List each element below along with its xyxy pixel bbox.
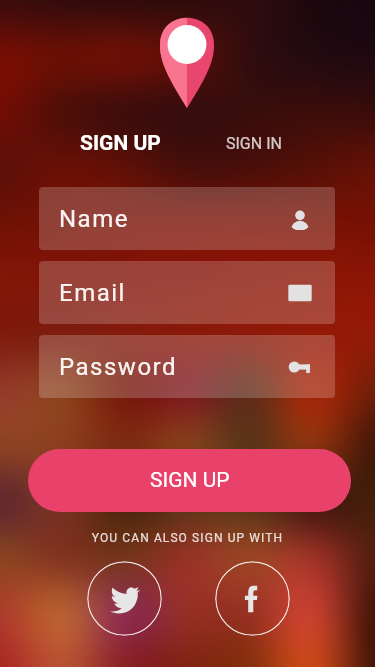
button[interactable]: Password <box>39 335 335 398</box>
button[interactable]: SIGN UP <box>28 449 351 512</box>
button[interactable]: SIGN IN <box>216 126 292 160</box>
button[interactable]: Email <box>39 261 335 324</box>
button[interactable]: Sign up with Facebook <box>215 561 290 636</box>
button[interactable]: Name <box>39 187 335 250</box>
button[interactable]: SIGN UP <box>70 126 171 160</box>
staticText: SIGN IN <box>226 134 282 153</box>
staticText: Name <box>59 205 129 233</box>
staticText: YOU CAN ALSO SIGN UP WITH <box>0 531 375 667</box>
staticText: Email <box>59 279 126 307</box>
staticText: SIGN UP <box>80 131 161 156</box>
staticText: SIGN UP <box>150 468 230 493</box>
staticText: Password <box>59 353 178 381</box>
button[interactable]: Sign up with Twitter <box>87 561 162 636</box>
